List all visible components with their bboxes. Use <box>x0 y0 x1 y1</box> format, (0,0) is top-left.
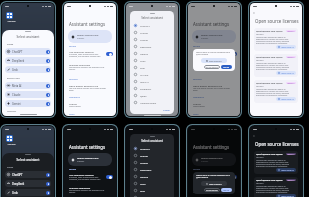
button[interactable]: Apache License 2.0 <box>276 194 296 197</box>
staticText: Digital assistant app <box>201 157 223 160</box>
button[interactable]: Qwen <box>130 92 174 99</box>
staticText: Apache 2.0 <box>287 30 295 32</box>
button[interactable]: Ultimate Brain <box>130 99 174 106</box>
staticText: Shortcuts <box>193 78 202 81</box>
staticText: DeepSeek <box>12 182 25 186</box>
button[interactable]: Meta AI <box>130 78 174 85</box>
button[interactable]: AboutLibraries Core Library <box>254 177 298 197</box>
staticText: Apache License 2.0 <box>281 169 294 171</box>
staticText: Meta AI <box>12 84 22 88</box>
button[interactable]: Open digital assistant tile <box>69 84 111 91</box>
button[interactable]: Apache License 2.0 <box>276 97 296 101</box>
staticText: Copilot <box>140 38 148 41</box>
staticText: Open assistant <box>209 183 222 185</box>
staticText: Assistant settings <box>69 21 106 27</box>
button[interactable]: Perplexity <box>130 85 174 92</box>
staticText: Choose which assistants are displayed in… <box>193 66 229 70</box>
button[interactable]: Kimi <box>130 187 174 194</box>
button[interactable]: AboutLibraries Core Library <box>254 151 298 174</box>
button[interactable]: Apache License 2.0 <box>276 168 296 172</box>
staticText: Apache 2.0 <box>287 179 295 181</box>
button[interactable]: Grok <box>130 57 174 64</box>
button[interactable]: Back <box>252 134 256 138</box>
button[interactable]: Gemini <box>5 100 51 107</box>
button[interactable]: Theme <box>193 102 235 107</box>
button[interactable]: Use assistant selector <box>69 50 113 57</box>
button[interactable]: Apache License 2.0 <box>276 71 296 75</box>
button[interactable]: Manage assistants <box>193 63 235 70</box>
button[interactable]: Do not add tile <box>204 188 220 192</box>
button[interactable]: AboutLibraries Core Library <box>254 80 298 103</box>
staticText: System default <box>69 105 81 107</box>
staticText: AboutLibraries automatically detects all… <box>256 185 296 193</box>
button[interactable]: Copilot <box>130 36 174 43</box>
button[interactable]: Copilot <box>130 159 174 166</box>
staticText: If enabled, select assistant each time. … <box>69 176 101 180</box>
button[interactable]: ChatGPT <box>5 171 51 178</box>
button[interactable]: Theme <box>69 102 111 107</box>
button[interactable]: ChatGPT <box>130 22 174 29</box>
button[interactable]: Add tile <box>221 65 232 69</box>
button[interactable]: Add tile <box>221 188 232 192</box>
button[interactable]: Digital assistant app <box>68 30 112 43</box>
button[interactable]: DeepSeek <box>130 166 174 173</box>
staticText: Use assistant selector <box>69 50 94 53</box>
button[interactable]: Kimi <box>130 64 174 71</box>
staticText: Switch! wants to add the following tile … <box>196 51 232 56</box>
button[interactable]: Manage assistants <box>69 63 111 70</box>
button[interactable]: Use assistant selector <box>193 50 237 57</box>
staticText: DeepSeek <box>12 59 25 63</box>
button[interactable]: Claude <box>5 91 51 98</box>
button[interactable]: Manage assistants <box>193 186 235 193</box>
staticText: Manage assistants <box>69 63 91 66</box>
staticText: Claude <box>12 93 21 97</box>
button[interactable]: Manage assistants <box>69 186 111 193</box>
button[interactable]: Le Chat <box>130 194 174 197</box>
button[interactable]: Apache License 2.0 <box>276 45 296 49</box>
staticText: Claude <box>140 154 148 157</box>
staticText: Assistants <box>7 110 17 113</box>
button[interactable]: Claude <box>130 29 174 36</box>
staticText: Choose which assistants are displayed in… <box>69 66 105 70</box>
button[interactable]: Digital assistant app <box>192 30 236 43</box>
button[interactable]: Open digital assistant tile <box>193 84 235 91</box>
staticText: Theme <box>193 102 201 105</box>
staticText: ChatGPT <box>140 24 150 27</box>
button[interactable]: Meta AI <box>5 82 51 89</box>
staticText: ChatGPT <box>201 37 209 39</box>
staticText: General <box>193 168 201 171</box>
button[interactable]: ChatGPT <box>5 48 51 55</box>
button[interactable]: DeepSeek <box>130 43 174 50</box>
button[interactable]: Open assistant <box>201 58 227 63</box>
button[interactable]: DeepSeek <box>5 180 51 187</box>
staticText: Manage assistants <box>193 186 215 189</box>
button[interactable]: Gemini <box>130 50 174 57</box>
button[interactable]: Do not add tile <box>204 65 220 69</box>
button[interactable]: AboutLibraries Core Library <box>254 28 298 51</box>
button[interactable]: Open assistant <box>201 181 227 186</box>
button[interactable]: Use assistant selector <box>193 173 237 180</box>
staticText: Use assistant selector <box>69 173 94 176</box>
button[interactable]: Cancel <box>162 108 171 113</box>
staticText: Mike Penz <box>256 182 264 184</box>
button[interactable]: Back <box>252 11 256 15</box>
staticText: Open assistant <box>209 60 222 62</box>
button[interactable]: Use assistant selector <box>69 173 113 180</box>
button[interactable]: Grok <box>130 180 174 187</box>
staticText: Ultimate Brain <box>140 101 157 104</box>
button[interactable]: Claude <box>130 152 174 159</box>
button[interactable]: Le Chat <box>130 71 174 78</box>
button[interactable]: Gemini <box>130 173 174 180</box>
staticText: General <box>69 45 77 48</box>
button[interactable]: Grok <box>5 189 51 196</box>
staticText: Pinned <box>7 166 14 169</box>
button[interactable]: Digital assistant app <box>192 153 236 166</box>
button[interactable]: ChatGPT <box>130 145 174 152</box>
button[interactable]: AboutLibraries Core Library <box>254 54 298 77</box>
staticText: Appearance <box>69 96 80 99</box>
button[interactable]: Digital assistant app <box>68 153 112 166</box>
staticText: Cancel <box>163 109 170 112</box>
staticText: AboutLibraries Core Library <box>256 179 283 182</box>
button[interactable]: Grok <box>5 66 51 73</box>
button[interactable]: DeepSeek <box>5 57 51 64</box>
